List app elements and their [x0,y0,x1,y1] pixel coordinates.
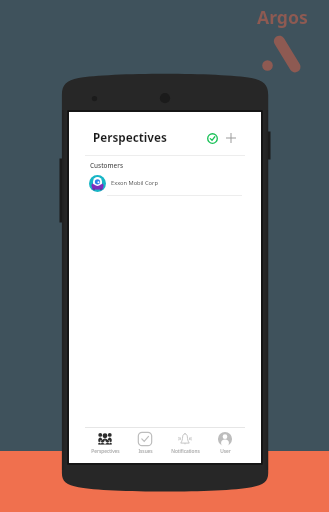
staticText: Perspectives [91,448,120,455]
button[interactable]: Perspectives [85,428,125,463]
staticText: Argos [257,5,308,29]
button[interactable]: Approve [201,127,223,149]
button[interactable]: Exxon Mobil Corp [69,176,261,195]
staticText: User [220,448,231,455]
button[interactable]: User [205,428,245,463]
staticText: Perspectives [93,129,167,145]
button[interactable]: Issues [125,428,165,463]
button[interactable]: Add [220,127,242,149]
staticText: Notifications [171,448,200,455]
button[interactable]: Notifications [165,428,205,463]
staticText: Customers [90,161,124,170]
staticText: Exxon Mobil Corp [111,179,158,187]
staticText: Issues [138,448,153,455]
